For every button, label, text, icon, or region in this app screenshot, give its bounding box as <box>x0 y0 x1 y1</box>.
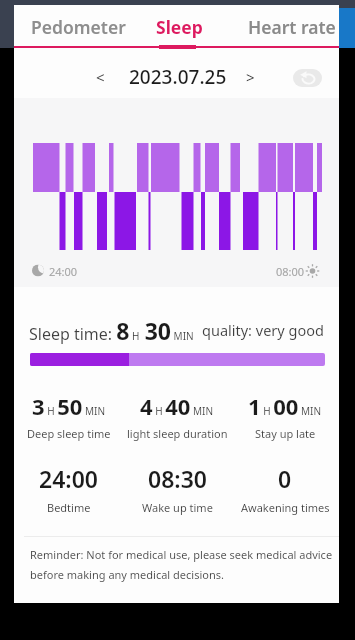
staticText: 24:00 <box>49 264 78 279</box>
staticText: Sleep <box>156 15 203 39</box>
button[interactable]: > <box>235 64 265 90</box>
staticText: Heart rate <box>248 15 336 39</box>
staticText: light sleep duration <box>127 426 228 441</box>
staticText: 08:30 <box>148 463 207 494</box>
staticText: 3 H 50 MIN <box>32 391 106 421</box>
staticText: 4 H 40 MIN <box>140 391 214 421</box>
staticText: Deep sleep time <box>27 426 111 441</box>
staticText: 0 <box>278 463 292 494</box>
staticText: 1 H 00 MIN <box>248 391 322 421</box>
staticText: Pedometer <box>31 15 126 39</box>
button[interactable]: Heart rate <box>237 9 347 45</box>
button[interactable] <box>293 69 322 87</box>
button[interactable]: Sleep <box>139 9 219 45</box>
staticText: 24:00 <box>39 463 98 494</box>
staticText: Sleep time: 8 H 30 MIN <box>29 315 194 346</box>
staticText: before making any medical decisions. <box>30 567 224 582</box>
staticText: quality: very good <box>202 320 324 340</box>
button[interactable]: < <box>85 64 115 90</box>
staticText: < <box>96 67 105 87</box>
staticText: 08:00 <box>276 264 305 279</box>
staticText: Stay up late <box>255 426 316 441</box>
staticText: Awakening times <box>241 500 330 515</box>
staticText: Reminder: Not for medical use, please se… <box>30 547 333 562</box>
staticText: 2023.07.25 <box>129 64 227 90</box>
button[interactable]: Pedometer <box>18 9 138 45</box>
staticText: > <box>246 67 255 87</box>
staticText: Wake up time <box>142 500 213 515</box>
staticText: Bedtime <box>47 500 91 515</box>
